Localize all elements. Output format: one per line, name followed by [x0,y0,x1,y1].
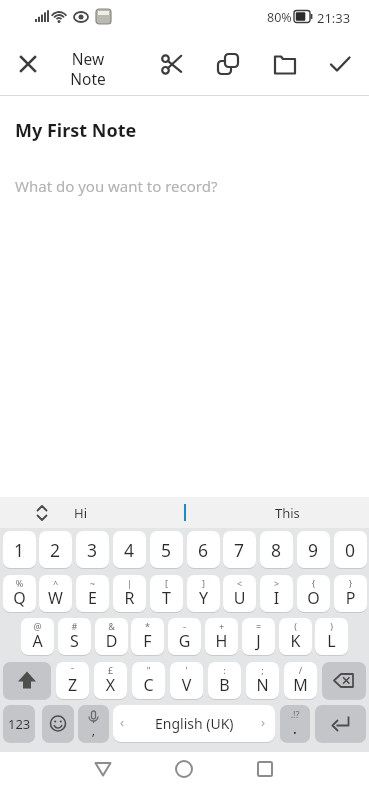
staticText: > [260,577,293,589]
button[interactable]: 6 [187,531,220,568]
staticText: 5 [161,538,172,562]
button[interactable]: [ [150,575,183,612]
staticText: 6 [198,538,209,562]
button[interactable]: 5 [150,531,183,568]
staticText: [ [150,577,183,589]
button[interactable]: 4 [113,531,146,568]
staticText: T [150,587,183,609]
staticText: My First Note [15,118,137,143]
staticText: + [205,620,238,632]
button[interactable] [165,750,203,788]
button[interactable]: * [131,618,164,655]
staticText: | [113,577,146,589]
button[interactable]: " [132,662,165,699]
button[interactable]: This [257,497,317,528]
staticText: 8 [271,538,282,562]
button[interactable] [209,45,247,83]
button[interactable]: 3 [76,531,109,568]
staticText: ' [170,664,203,676]
staticText: Q [3,587,36,609]
staticText: ; [246,664,279,676]
button[interactable]: New Note [55,45,121,91]
staticText: N [246,674,279,696]
button[interactable]: @ [21,618,54,655]
button[interactable]: | [113,575,146,612]
button[interactable]: 2 [39,531,72,568]
staticText: S [58,630,91,652]
button[interactable]: # [58,618,91,655]
button[interactable]: ' [170,662,203,699]
staticText: ‹ [120,713,125,731]
button[interactable]: £ [94,662,127,699]
staticText: @ [21,620,54,632]
staticText: U [223,587,256,609]
button[interactable]: + [205,618,238,655]
button[interactable] [153,45,191,83]
staticText: L [315,630,348,652]
button[interactable]: ; [246,662,279,699]
button[interactable]: / [284,662,317,699]
staticText: 80% [267,9,292,26]
staticText: , [78,721,109,739]
staticText: W [39,587,72,609]
button[interactable]: ] [187,575,220,612]
button[interactable] [246,750,284,788]
button[interactable] [84,750,122,788]
button[interactable]: English (UK) [113,705,275,742]
staticText: This [275,504,300,522]
button[interactable]: 1 [3,531,36,568]
button[interactable]: - [168,618,201,655]
staticText: › [261,713,266,731]
button[interactable]: : [208,662,241,699]
button[interactable]: 8 [260,531,293,568]
button[interactable]: % [3,575,36,612]
staticText: £ [94,664,127,676]
staticText: = [242,620,275,632]
staticText: C [132,674,165,696]
staticText: ˉ [56,664,89,676]
staticText: ( [279,620,312,632]
button[interactable]: 9 [297,531,330,568]
button[interactable]: ~ [76,575,109,612]
staticText: B [208,674,241,696]
button[interactable]: ˉ [56,662,89,699]
staticText: ] [187,577,220,589]
button[interactable] [266,45,304,83]
staticText: 4 [124,538,135,562]
button[interactable]: 123 [3,705,35,742]
button[interactable]: & [95,618,128,655]
button[interactable] [321,45,359,83]
button[interactable]: , [78,705,109,742]
button[interactable]: = [242,618,275,655]
button[interactable]: ) [315,618,348,655]
button[interactable]: ^ [39,575,72,612]
staticText: Y [187,587,220,609]
staticText: V [170,674,203,696]
staticText: Z [56,674,89,696]
staticText: A [21,630,54,652]
button[interactable]: .!? [280,705,310,742]
staticText: < [223,577,256,589]
button[interactable]: > [260,575,293,612]
staticText: New Note [70,48,106,89]
staticText: ^ [39,577,72,589]
staticText: 1 [14,538,25,562]
staticText: E [76,587,109,609]
button[interactable] [315,705,366,742]
button[interactable] [3,662,51,699]
button[interactable]: 0 [334,531,367,568]
button[interactable] [322,662,366,699]
button[interactable]: { [297,575,330,612]
button[interactable] [9,45,47,83]
button[interactable]: < [223,575,256,612]
staticText: - [168,620,201,632]
button[interactable]: ( [279,618,312,655]
staticText: " [132,664,165,676]
button[interactable]: } [334,575,367,612]
button[interactable] [42,705,74,742]
staticText: H [205,630,238,652]
staticText: X [94,674,127,696]
staticText: R [113,587,146,609]
button[interactable]: Hi [50,497,110,528]
button[interactable]: 7 [223,531,256,568]
